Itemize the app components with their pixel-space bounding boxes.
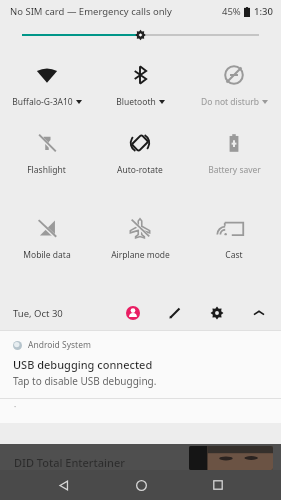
button[interactable]: Mobile data <box>0 207 93 261</box>
button[interactable]: Airplane mode <box>93 207 187 261</box>
staticText: 45% <box>222 5 241 18</box>
staticText: No SIM card — Emergency calls only <box>10 5 172 18</box>
staticText: Bluetooth <box>116 96 156 108</box>
button[interactable]: Brightness <box>0 22 281 48</box>
button[interactable]: Collapse <box>247 301 271 325</box>
button[interactable]: Do not disturb <box>187 54 281 108</box>
staticText: Battery saver <box>208 164 261 176</box>
button[interactable]: Android System <box>0 331 281 398</box>
button[interactable]: Battery saver <box>187 122 281 176</box>
button[interactable]: Recent apps <box>203 470 233 500</box>
button[interactable]: Flashlight <box>0 122 93 176</box>
staticText: Tue, Oct 30 <box>13 307 63 320</box>
button[interactable]: Settings <box>205 301 229 325</box>
button[interactable]: Auto-rotate <box>93 122 187 176</box>
staticText: Buffalo-G-3A10 <box>12 96 73 108</box>
staticText: · <box>14 401 17 412</box>
button[interactable]: Home <box>126 470 156 500</box>
staticText: Flashlight <box>27 164 66 176</box>
button[interactable]: Cast <box>187 207 281 261</box>
staticText: Auto-rotate <box>117 164 163 176</box>
button[interactable]: Back <box>48 470 78 500</box>
staticText: USB debugging connected <box>13 357 153 372</box>
staticText: 1:30 <box>254 5 273 18</box>
staticText: Do not disturb <box>201 96 259 108</box>
button[interactable]: Buffalo-G-3A10 <box>0 54 93 108</box>
staticText: Cast <box>225 249 243 261</box>
staticText: Android System <box>28 339 91 351</box>
staticText: Mobile data <box>23 249 71 261</box>
button[interactable]: Bluetooth <box>93 54 187 108</box>
button[interactable]: User account <box>121 301 145 325</box>
staticText: DID Total Entertainer <box>14 455 125 470</box>
button[interactable]: DID Total Entertainer <box>0 444 281 470</box>
staticText: Tap to disable USB debugging. <box>13 374 157 388</box>
staticText: Airplane mode <box>111 249 170 261</box>
button[interactable]: Edit tiles <box>163 301 187 325</box>
